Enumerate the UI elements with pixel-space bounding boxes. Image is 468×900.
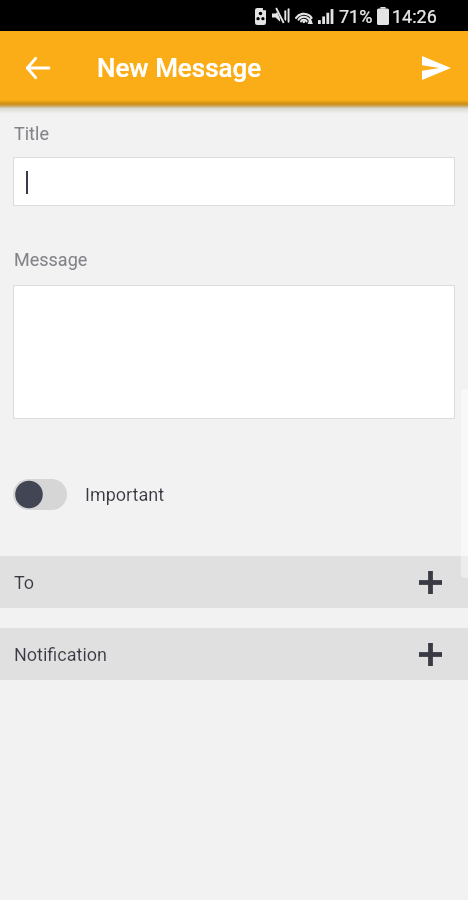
staticText: 71% <box>339 6 373 27</box>
staticText: New Message <box>97 53 262 83</box>
button[interactable]: Send <box>412 44 460 92</box>
staticText: 14:26 <box>392 6 437 27</box>
staticText: To <box>14 572 35 593</box>
button[interactable]: To <box>0 556 468 608</box>
button[interactable]: Important toggle <box>5 471 75 518</box>
staticText: Title <box>14 123 49 144</box>
button[interactable]: Back <box>13 44 61 92</box>
button[interactable] <box>13 157 455 206</box>
button[interactable]: Notification <box>0 628 468 680</box>
button[interactable] <box>13 285 455 419</box>
staticText: Important <box>85 484 165 505</box>
staticText: Message <box>14 249 88 270</box>
staticText: Notification <box>14 644 108 665</box>
